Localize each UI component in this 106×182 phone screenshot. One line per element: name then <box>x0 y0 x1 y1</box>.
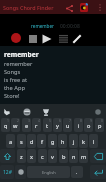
button[interactable]: Numbers and symbols <box>0 165 14 179</box>
button[interactable]: 9 <box>84 118 93 132</box>
button[interactable]: More options <box>95 2 105 12</box>
staticText: o <box>87 122 91 130</box>
button[interactable]: Open app <box>80 3 88 12</box>
staticText: remember <box>31 23 54 29</box>
button[interactable]: x <box>27 149 36 163</box>
staticText: y <box>56 122 59 130</box>
button[interactable]: k <box>79 134 88 148</box>
button[interactable]: 3 <box>22 118 31 132</box>
staticText: l <box>93 138 95 146</box>
button[interactable]: s <box>17 134 26 148</box>
button[interactable]: v <box>48 149 57 163</box>
button[interactable]: h <box>58 134 67 148</box>
staticText: 1 <box>7 118 9 123</box>
button[interactable]: 8 <box>74 118 83 132</box>
staticText: 12# <box>3 169 12 176</box>
button[interactable]: Share <box>63 2 75 14</box>
button[interactable]: Period <box>71 166 83 178</box>
button[interactable]: 0 <box>95 118 104 132</box>
button[interactable]: 2 <box>11 118 20 132</box>
staticText: remember <box>4 50 39 59</box>
staticText: 0 <box>101 118 103 123</box>
button[interactable]: Play <box>42 34 52 44</box>
button[interactable]: Recordings list <box>58 34 68 44</box>
button[interactable]: Delete <box>90 149 106 163</box>
staticText: d <box>30 138 34 146</box>
staticText: i <box>78 122 80 130</box>
button[interactable]: a <box>6 134 15 148</box>
staticText: English <box>42 170 56 175</box>
button[interactable]: 5 <box>43 118 52 132</box>
button[interactable]: Keyboard settings <box>93 107 103 117</box>
button[interactable]: j <box>69 134 78 148</box>
button[interactable]: Edit <box>70 32 83 45</box>
staticText: b <box>62 153 66 161</box>
staticText: t <box>46 122 49 130</box>
staticText: q <box>4 122 8 130</box>
staticText: 3 <box>28 118 30 123</box>
staticText: x <box>30 153 33 161</box>
button[interactable]: c <box>38 149 47 163</box>
staticText: 00:00:08 <box>60 23 80 30</box>
staticText: 2 <box>17 118 19 123</box>
staticText: j <box>73 138 75 146</box>
staticText: c <box>41 153 44 161</box>
staticText: n <box>72 153 76 161</box>
button[interactable]: b <box>59 149 68 163</box>
button[interactable]: English <box>27 166 70 178</box>
staticText: v <box>51 153 54 161</box>
button[interactable]: f <box>37 134 46 148</box>
button[interactable]: Emoji suggestion 3 <box>41 107 51 117</box>
staticText: z <box>20 153 23 161</box>
staticText: u <box>66 122 70 130</box>
button[interactable]: 6 <box>53 118 62 132</box>
staticText: r <box>35 122 38 130</box>
staticText: 6 <box>59 118 61 123</box>
staticText: 5 <box>49 118 51 123</box>
button[interactable]: n <box>69 149 78 163</box>
button[interactable]: Emoji suggestion 2 <box>22 107 32 117</box>
staticText: e <box>25 122 29 130</box>
staticText: 9 <box>90 118 92 123</box>
staticText: s <box>20 138 23 146</box>
staticText: 7 <box>69 118 71 123</box>
staticText: p <box>98 122 102 130</box>
staticText: 8 <box>80 118 82 123</box>
button[interactable]: Emoji <box>15 165 26 179</box>
staticText: a <box>9 138 13 146</box>
button[interactable]: 1 <box>1 118 10 132</box>
button[interactable]: Record <box>11 33 21 43</box>
button[interactable]: Enter <box>90 165 106 179</box>
button[interactable]: g <box>48 134 57 148</box>
button[interactable]: Emoji suggestion 1 <box>2 107 12 117</box>
staticText: 4 <box>38 118 40 123</box>
button[interactable]: Shift <box>0 149 15 163</box>
button[interactable]: 4 <box>32 118 41 132</box>
staticText: remember Songs is free at the App Store! <box>4 60 33 100</box>
button[interactable]: d <box>27 134 36 148</box>
staticText: m <box>81 153 87 161</box>
button[interactable]: z <box>17 149 26 163</box>
button[interactable]: l <box>89 134 98 148</box>
staticText: k <box>82 138 85 146</box>
staticText: f <box>41 138 43 146</box>
button[interactable]: m <box>79 149 88 163</box>
staticText: w <box>13 122 18 130</box>
staticText: . <box>76 169 78 176</box>
staticText: h <box>61 138 65 146</box>
staticText: Songs Chord Finder <box>3 4 54 11</box>
staticText: g <box>51 138 55 146</box>
button[interactable]: 7 <box>63 118 72 132</box>
